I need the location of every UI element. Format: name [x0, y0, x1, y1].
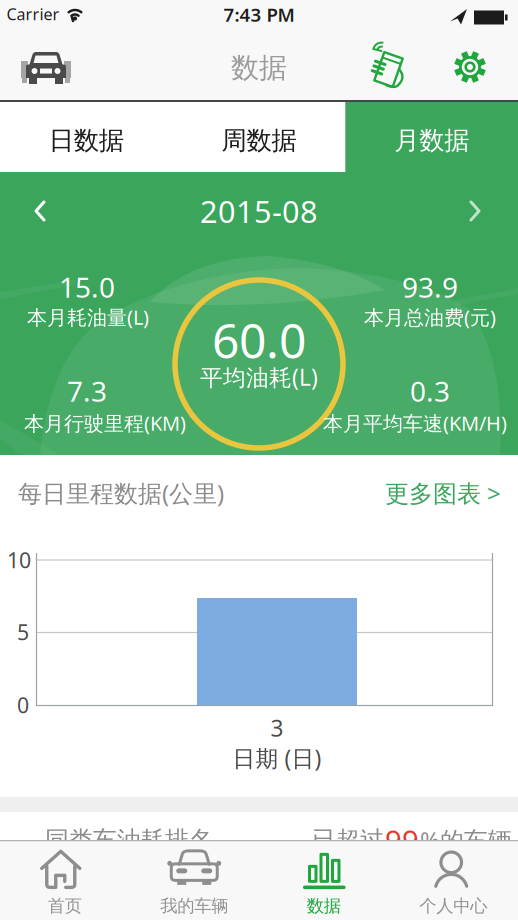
button[interactable]: Switch car — [13, 45, 79, 89]
staticText: 数据 — [231, 51, 287, 85]
staticText: 更多图表 > — [385, 477, 501, 509]
staticText: 日期 (日) — [232, 743, 321, 773]
button[interactable]: Previous month — [34, 198, 58, 224]
staticText: 3 — [270, 713, 283, 743]
button[interactable]: 更多图表 > — [385, 477, 501, 509]
button[interactable]: Settings — [446, 43, 494, 91]
staticText: 已超过 — [312, 825, 384, 855]
staticText: 本月平均车速(KM/H) — [323, 410, 507, 436]
button[interactable]: 月数据 — [345, 105, 518, 175]
staticText: 99 — [385, 820, 419, 859]
staticText: 本月总油费(元) — [364, 304, 496, 330]
staticText: 我的车辆 — [160, 895, 228, 917]
staticText: 7:43 PM — [223, 2, 294, 27]
staticText: 平均油耗(L) — [200, 362, 318, 392]
staticText: 0 — [17, 691, 29, 719]
staticText: 93.9 — [402, 268, 458, 306]
staticText: 周数据 — [221, 125, 296, 156]
staticText: 同类车油耗排名 — [45, 825, 213, 855]
button[interactable]: 个人中心 — [391, 844, 515, 920]
button[interactable]: Next month — [457, 198, 481, 224]
staticText: 7.3 — [67, 372, 107, 410]
staticText: 0.3 — [410, 372, 450, 410]
staticText: 2015-08 — [200, 191, 318, 231]
button[interactable]: 首页 — [3, 844, 127, 920]
button[interactable]: Connect device — [364, 43, 412, 91]
staticText: 5 — [17, 618, 29, 646]
staticText: 60.0 — [212, 308, 306, 372]
staticText: 个人中心 — [419, 895, 487, 917]
button[interactable]: 我的车辆 — [132, 844, 256, 920]
staticText: 首页 — [48, 895, 82, 917]
button[interactable]: 同类车油耗排名 — [0, 812, 518, 840]
button[interactable]: 周数据 — [173, 105, 345, 175]
staticText: 10 — [7, 546, 31, 574]
staticText: 月数据 — [394, 125, 469, 156]
staticText: 日数据 — [49, 125, 124, 156]
button[interactable]: 日数据 — [0, 105, 173, 175]
staticText: 每日里程数据(公里) — [18, 477, 224, 509]
staticText: %的车辆 — [420, 824, 512, 856]
staticText: 本月行驶里程(KM) — [24, 410, 186, 436]
staticText: Carrier — [6, 3, 59, 25]
staticText: 15.0 — [59, 268, 115, 306]
staticText: 数据 — [307, 895, 341, 917]
button[interactable]: 数据 — [262, 844, 386, 920]
staticText: 本月耗油量(L) — [27, 304, 149, 330]
